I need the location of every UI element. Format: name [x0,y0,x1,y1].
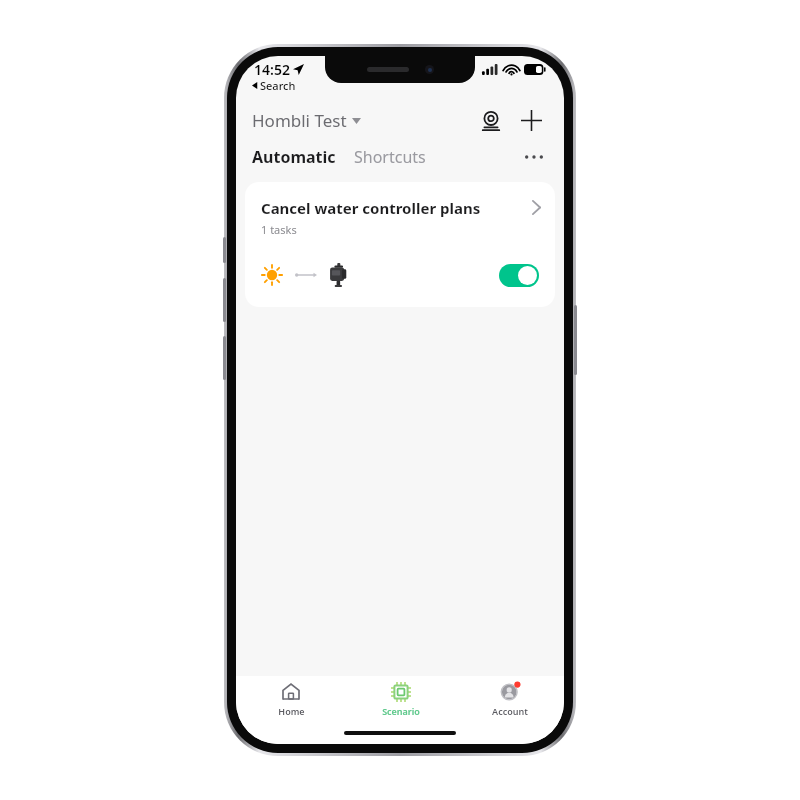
staticText: Account [492,705,528,717]
staticText: Automatic [252,146,336,168]
staticText: Scenario [382,705,420,717]
button[interactable]: Add [514,103,548,137]
button[interactable]: Home [236,676,346,722]
button[interactable]: Scenario [346,676,455,722]
button[interactable]: More options [520,143,548,171]
staticText: Hombli Test [252,109,347,132]
button[interactable]: Hombli Test [252,109,361,132]
staticText: 14:52 [254,60,290,79]
staticText: 1 tasks [261,222,297,237]
staticText: Cancel water controller plans [261,198,481,218]
staticText: Shortcuts [354,146,426,168]
button[interactable]: Scan device [474,103,508,137]
button[interactable]: Account [455,676,564,722]
staticText: Search [260,78,296,93]
staticText: Home [278,705,305,717]
button[interactable]: Automatic [252,146,338,168]
button[interactable]: Shortcuts [354,146,426,168]
button[interactable]: Cancel water controller plans [245,182,555,307]
button[interactable]: Enable scene [499,264,539,287]
